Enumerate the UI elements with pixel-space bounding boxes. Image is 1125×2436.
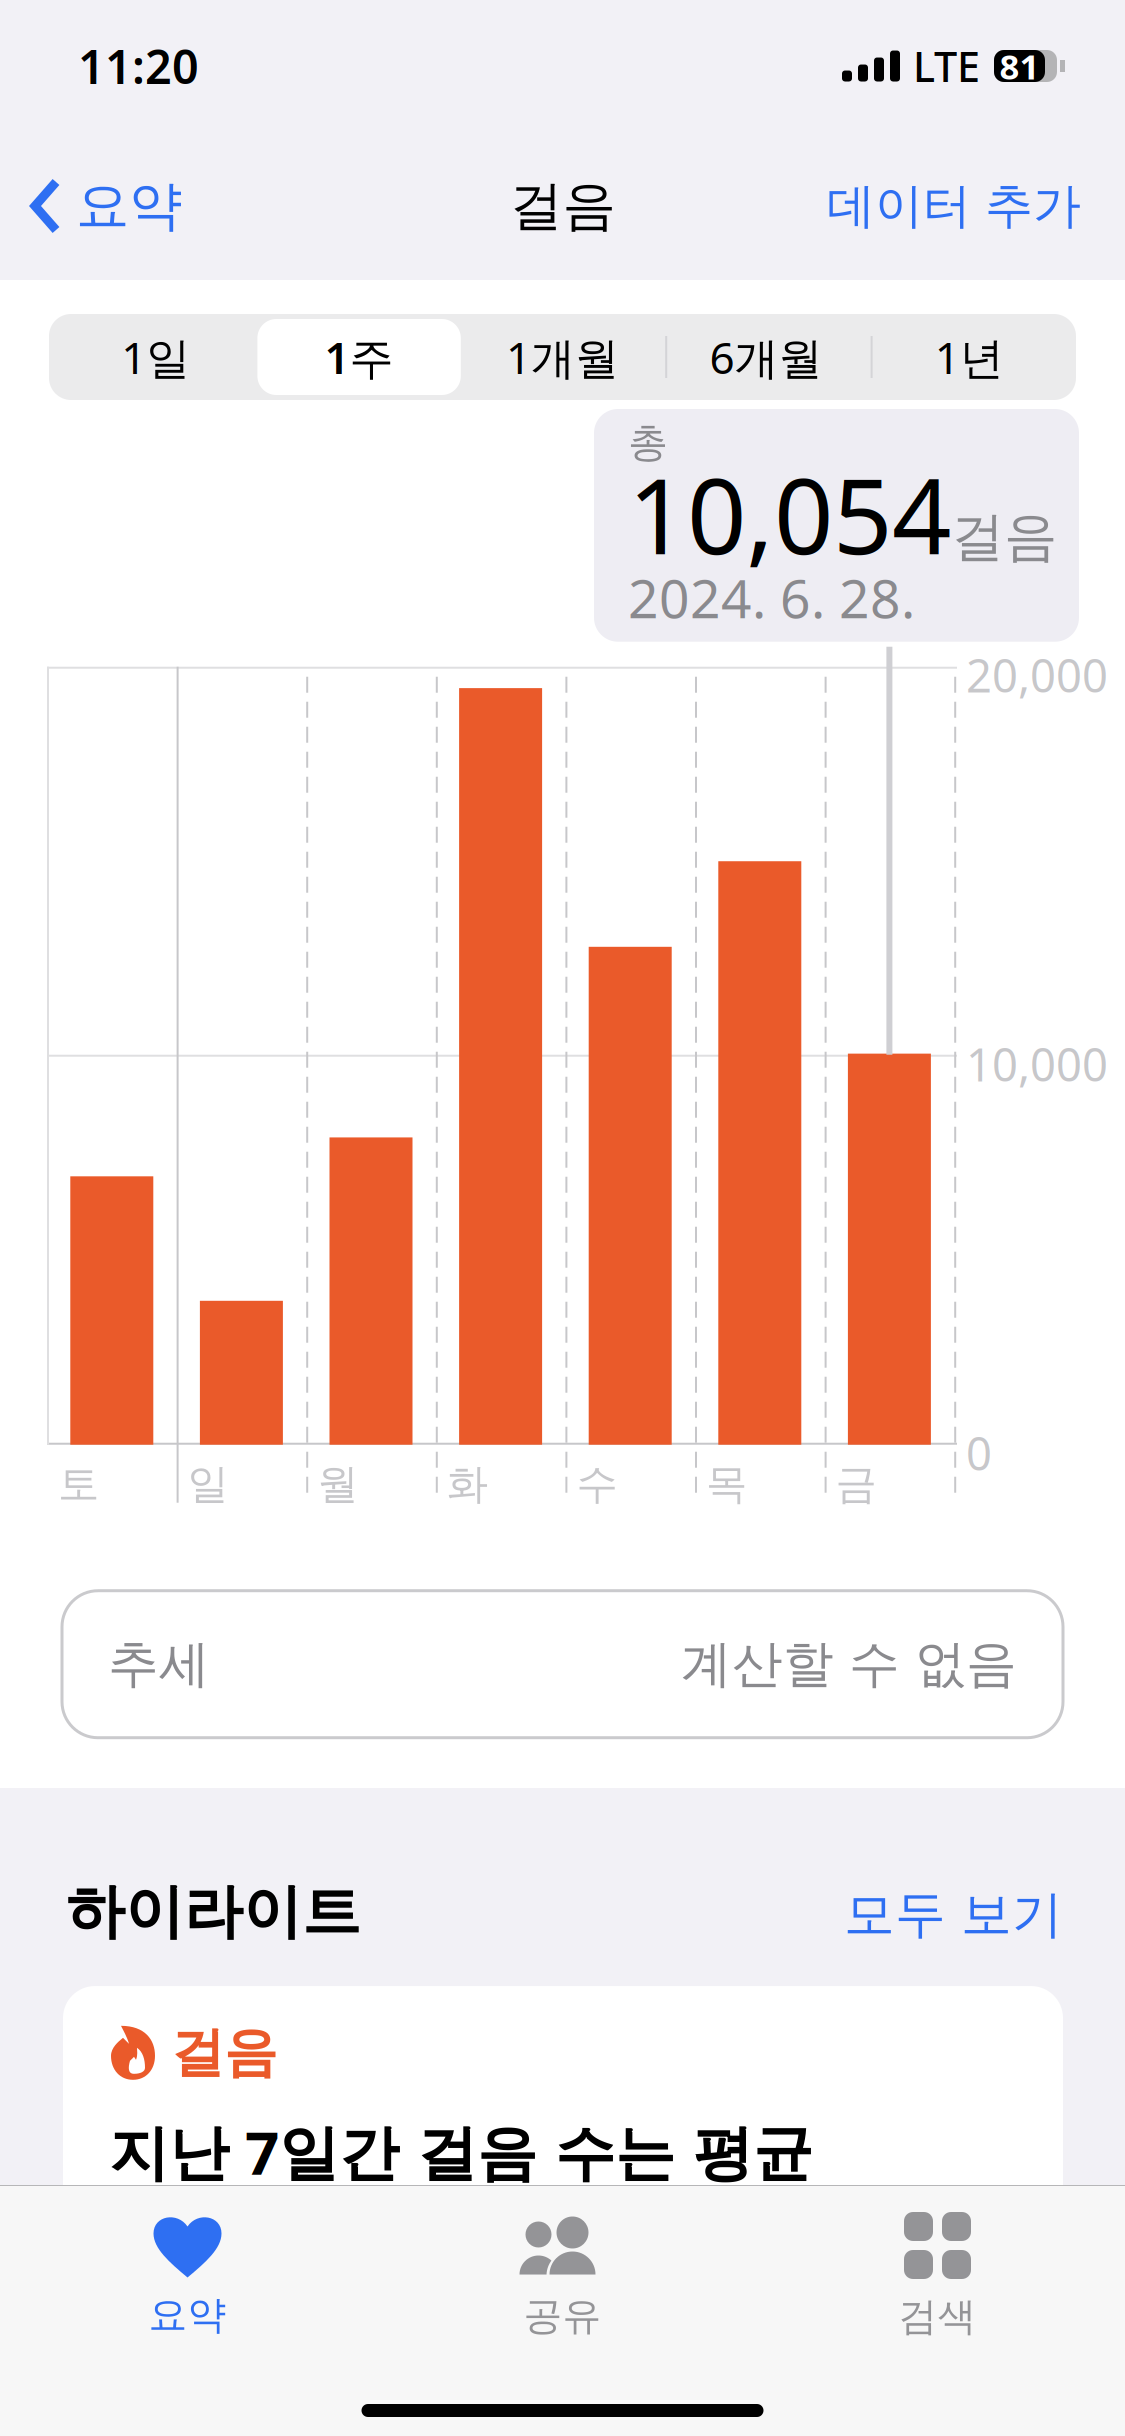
staticText: 81 [999, 43, 1039, 89]
staticText: 걸음 [951, 513, 1057, 560]
staticText: 목 [706, 1465, 747, 1504]
staticText: 0 [966, 1430, 992, 1476]
button[interactable]: 6개월 [664, 318, 868, 396]
staticText: 20,000 [966, 652, 1108, 698]
staticText: 총 [628, 425, 668, 460]
staticText: 화 [447, 1465, 488, 1504]
staticText: 데이터 추가 [827, 182, 1081, 230]
button[interactable]: 공유 [375, 2186, 750, 2340]
button[interactable]: 요약 [0, 151, 198, 261]
button[interactable]: 데이터 추가 [811, 151, 1125, 261]
staticText: 하이라이트 [66, 1876, 361, 1948]
staticText: LTE [913, 39, 980, 93]
staticText: 1년 [935, 328, 1004, 386]
button[interactable]: 걸음 [63, 1986, 1063, 2266]
staticText: 11:20 [78, 35, 199, 97]
button[interactable]: 1개월 [461, 318, 664, 396]
staticText: 금 [836, 1465, 877, 1504]
staticText: 수 [576, 1465, 617, 1504]
staticText: 지난 7일간 걸음 수는 평균 [109, 2112, 813, 2191]
staticText: 1주 [325, 328, 394, 386]
button[interactable]: 추세 [62, 1591, 1063, 1738]
staticText: 1개월 [506, 328, 619, 386]
button[interactable]: 모두 보기 [844, 1884, 1063, 1946]
staticText: 일 [188, 1465, 229, 1504]
staticText: 검색 [898, 2293, 976, 2340]
staticText: 10,000 [966, 1041, 1108, 1087]
button[interactable]: 1일 [54, 318, 257, 396]
staticText: 추세 [108, 1633, 210, 1695]
button[interactable]: 1주 [257, 318, 461, 396]
staticText: 걸음 [171, 2020, 277, 2086]
staticText: 토 [58, 1465, 99, 1504]
staticText: 계산할 수 없음 [681, 1633, 1017, 1695]
staticText: 요약 [76, 179, 182, 233]
button[interactable]: 요약 [0, 2187, 375, 2339]
staticText: 요약 [148, 2291, 226, 2339]
button[interactable]: 1년 [868, 318, 1071, 396]
staticText: 걸음 [509, 179, 615, 233]
staticText: 2024. 6. 28. [628, 571, 915, 624]
staticText: 6개월 [709, 328, 822, 386]
button[interactable]: 검색 [750, 2186, 1125, 2340]
staticText: 1일 [121, 328, 190, 386]
staticText: 공유 [523, 2292, 601, 2340]
staticText: 10,054 [628, 464, 951, 563]
staticText: 모두 보기 [844, 1884, 1063, 1946]
staticText: 월 [317, 1465, 358, 1504]
